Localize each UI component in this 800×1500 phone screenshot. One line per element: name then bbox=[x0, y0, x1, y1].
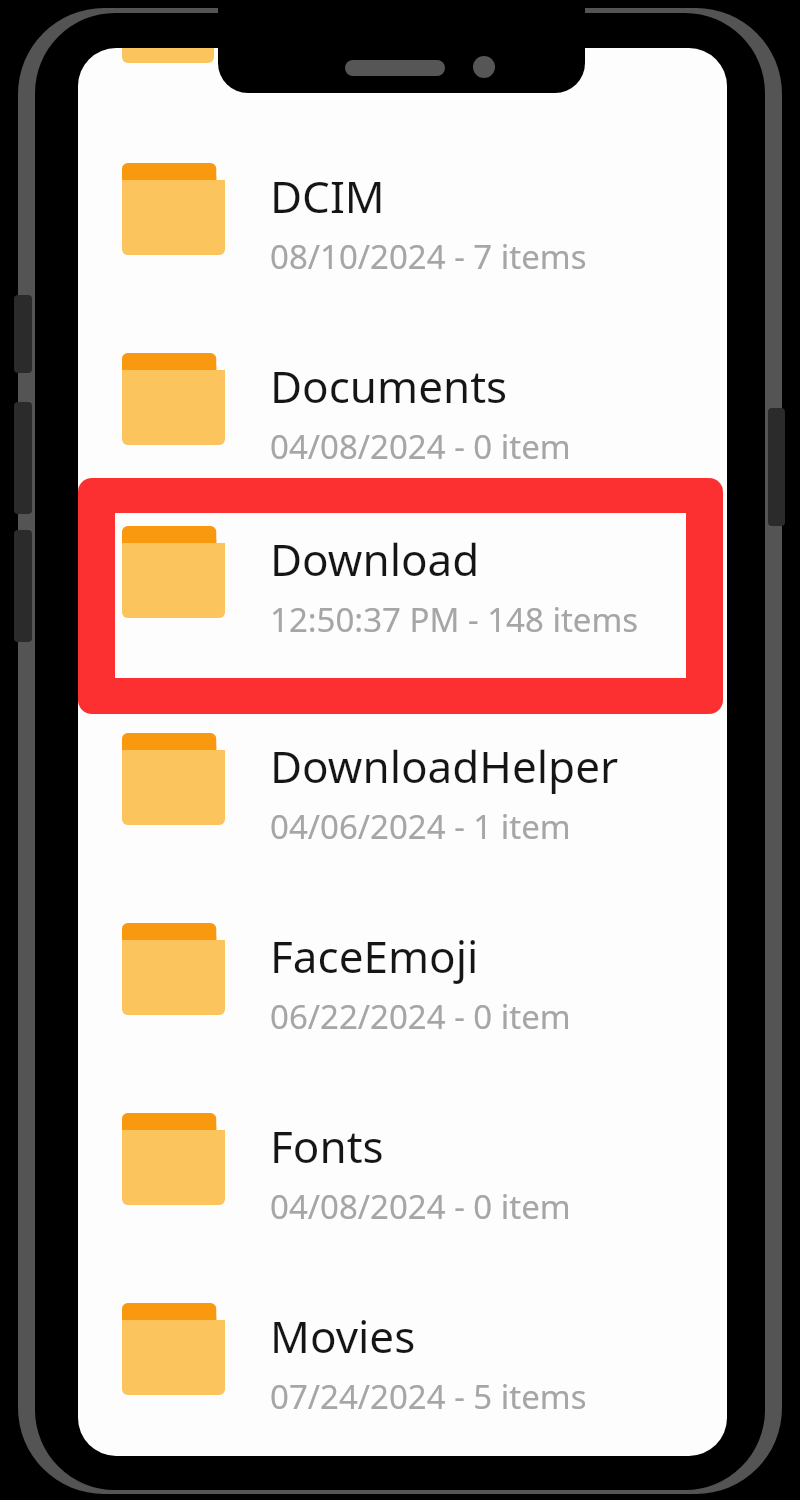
button[interactable]: FaceEmoji bbox=[78, 923, 727, 1083]
button[interactable]: DownloadHelper bbox=[78, 733, 727, 893]
staticText: 12:50:37 PM - 148 items bbox=[270, 649, 639, 694]
button[interactable]: Highlighted Download folder bbox=[78, 478, 723, 714]
button[interactable]: Documents bbox=[78, 353, 727, 513]
button[interactable]: Download bbox=[78, 543, 727, 733]
staticText: Fonts bbox=[270, 1116, 384, 1176]
staticText: 07/24/2024 - 5 items bbox=[270, 1374, 587, 1419]
staticText: FaceEmoji bbox=[270, 926, 479, 986]
staticText: Documents bbox=[270, 356, 508, 416]
staticText: Download bbox=[270, 529, 480, 589]
staticText: 12:50:37 PM - 148 items bbox=[270, 597, 639, 642]
staticText: 04/08/2024 - 0 item bbox=[270, 1184, 571, 1229]
staticText: 04/06/2024 - 1 item bbox=[270, 804, 571, 849]
button[interactable]: Fonts bbox=[78, 1113, 727, 1273]
staticText: 06/22/2024 - 0 item bbox=[270, 994, 571, 1039]
button[interactable]: DCIM bbox=[78, 163, 727, 323]
button[interactable]: Movies bbox=[78, 1303, 727, 1456]
staticText: Movies bbox=[270, 1306, 416, 1366]
staticText: DCIM bbox=[270, 166, 385, 226]
staticText: 08/10/2024 - 7 items bbox=[270, 234, 587, 279]
staticText: Download bbox=[270, 581, 480, 641]
staticText: 04/08/2024 - 0 item bbox=[270, 424, 571, 469]
staticText: DownloadHelper bbox=[270, 736, 619, 796]
